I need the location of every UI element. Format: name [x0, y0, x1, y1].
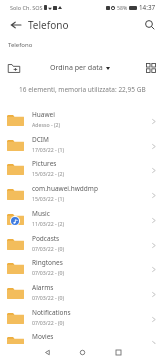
staticText: 07/03/22 - (0) [32, 319, 65, 326]
staticText: Ringtones [32, 258, 63, 267]
button[interactable]: New folder [5, 58, 23, 76]
button[interactable]: Podcasts [0, 232, 164, 257]
button[interactable]: Alarms [0, 281, 164, 306]
button[interactable]: Home [70, 344, 94, 360]
staticText: 07/03/22 - (0) [32, 245, 65, 252]
staticText: Podcasts [32, 234, 60, 243]
button[interactable]: Back [35, 344, 59, 360]
staticText: 15/03/22 - (2) [32, 170, 65, 177]
button[interactable]: Search [140, 18, 160, 32]
staticText: Telefono [28, 18, 69, 32]
button[interactable]: DCIM [0, 133, 164, 158]
button[interactable]: Ringtones [0, 256, 164, 281]
button[interactable]: Recents [106, 344, 130, 360]
staticText: Notifications [32, 308, 71, 317]
button[interactable]: Movies [0, 330, 164, 355]
staticText: Huawei [32, 110, 55, 119]
button[interactable]: Pictures [0, 157, 164, 182]
staticText: Alarms [32, 283, 54, 292]
staticText: 58% [117, 4, 128, 11]
staticText: Solo Ch. SOS [10, 4, 43, 11]
staticText: 15/03/22 - (1) [32, 195, 65, 202]
staticText: Ordina per data [50, 62, 103, 72]
staticText: 07/03/22 - (0) [32, 294, 65, 301]
staticText: 07/03/22 - (0) [32, 269, 65, 276]
staticText: DCIM [32, 135, 49, 144]
staticText: com.huawei.hwddmp [32, 184, 98, 193]
button[interactable]: Notifications [0, 306, 164, 331]
button[interactable]: Telefono [8, 41, 33, 49]
staticText: 11/03/22 - (2) [32, 220, 65, 227]
staticText: Pictures [32, 159, 57, 168]
button[interactable]: com.huawei.hwddmp [0, 182, 164, 207]
button[interactable]: Huawei [0, 108, 164, 133]
staticText: Adesso - (2) [32, 121, 60, 128]
staticText: 17/03/22 - (1) [32, 146, 65, 153]
staticText: 16 elementi, memoria utilizzata: 22,95 G… [19, 85, 146, 94]
button[interactable]: Music [0, 207, 164, 232]
button[interactable]: Grid view [141, 58, 159, 76]
button[interactable]: Ordina per data [50, 62, 110, 72]
staticText: Music [32, 209, 50, 218]
staticText: 14:37 [139, 3, 156, 12]
button[interactable]: Back [6, 18, 26, 32]
staticText: Movies [32, 332, 54, 341]
